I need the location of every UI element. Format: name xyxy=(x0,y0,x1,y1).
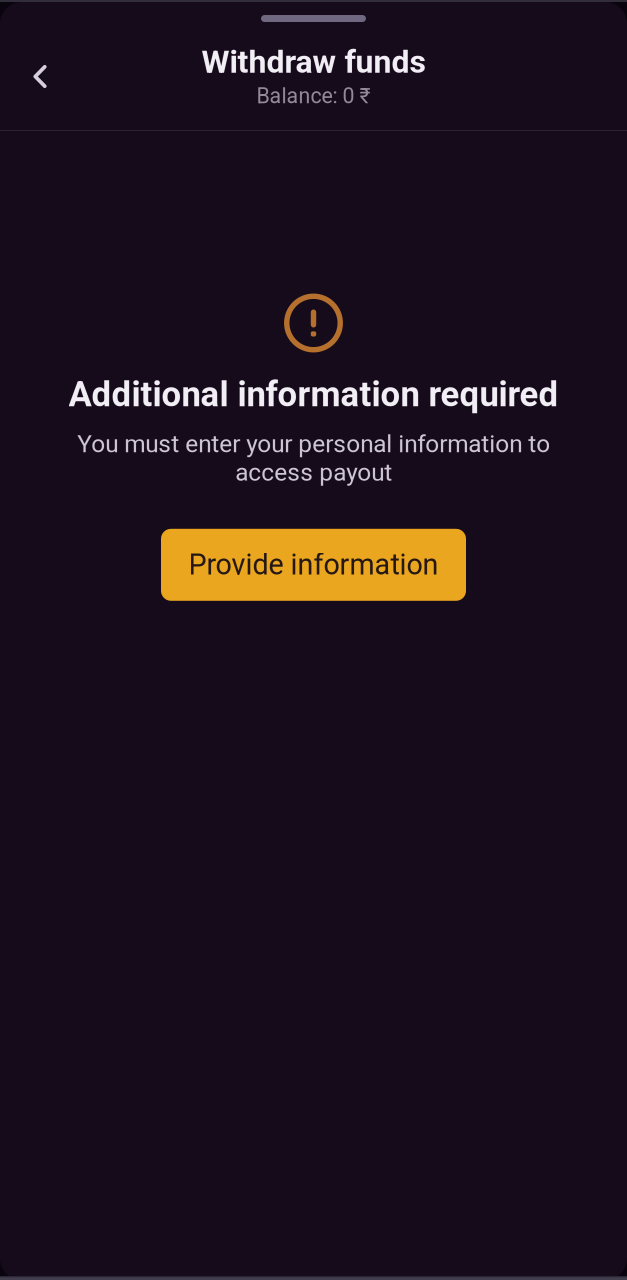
button[interactable]: Provide information xyxy=(161,529,466,601)
staticText: You must enter your personal information… xyxy=(77,430,550,487)
button[interactable]: Back xyxy=(14,50,66,102)
staticText: Withdraw funds xyxy=(201,43,425,80)
staticText: Balance: 0 ₹ xyxy=(256,83,370,108)
staticText: Additional information required xyxy=(68,374,558,415)
staticText: Provide information xyxy=(188,548,438,582)
